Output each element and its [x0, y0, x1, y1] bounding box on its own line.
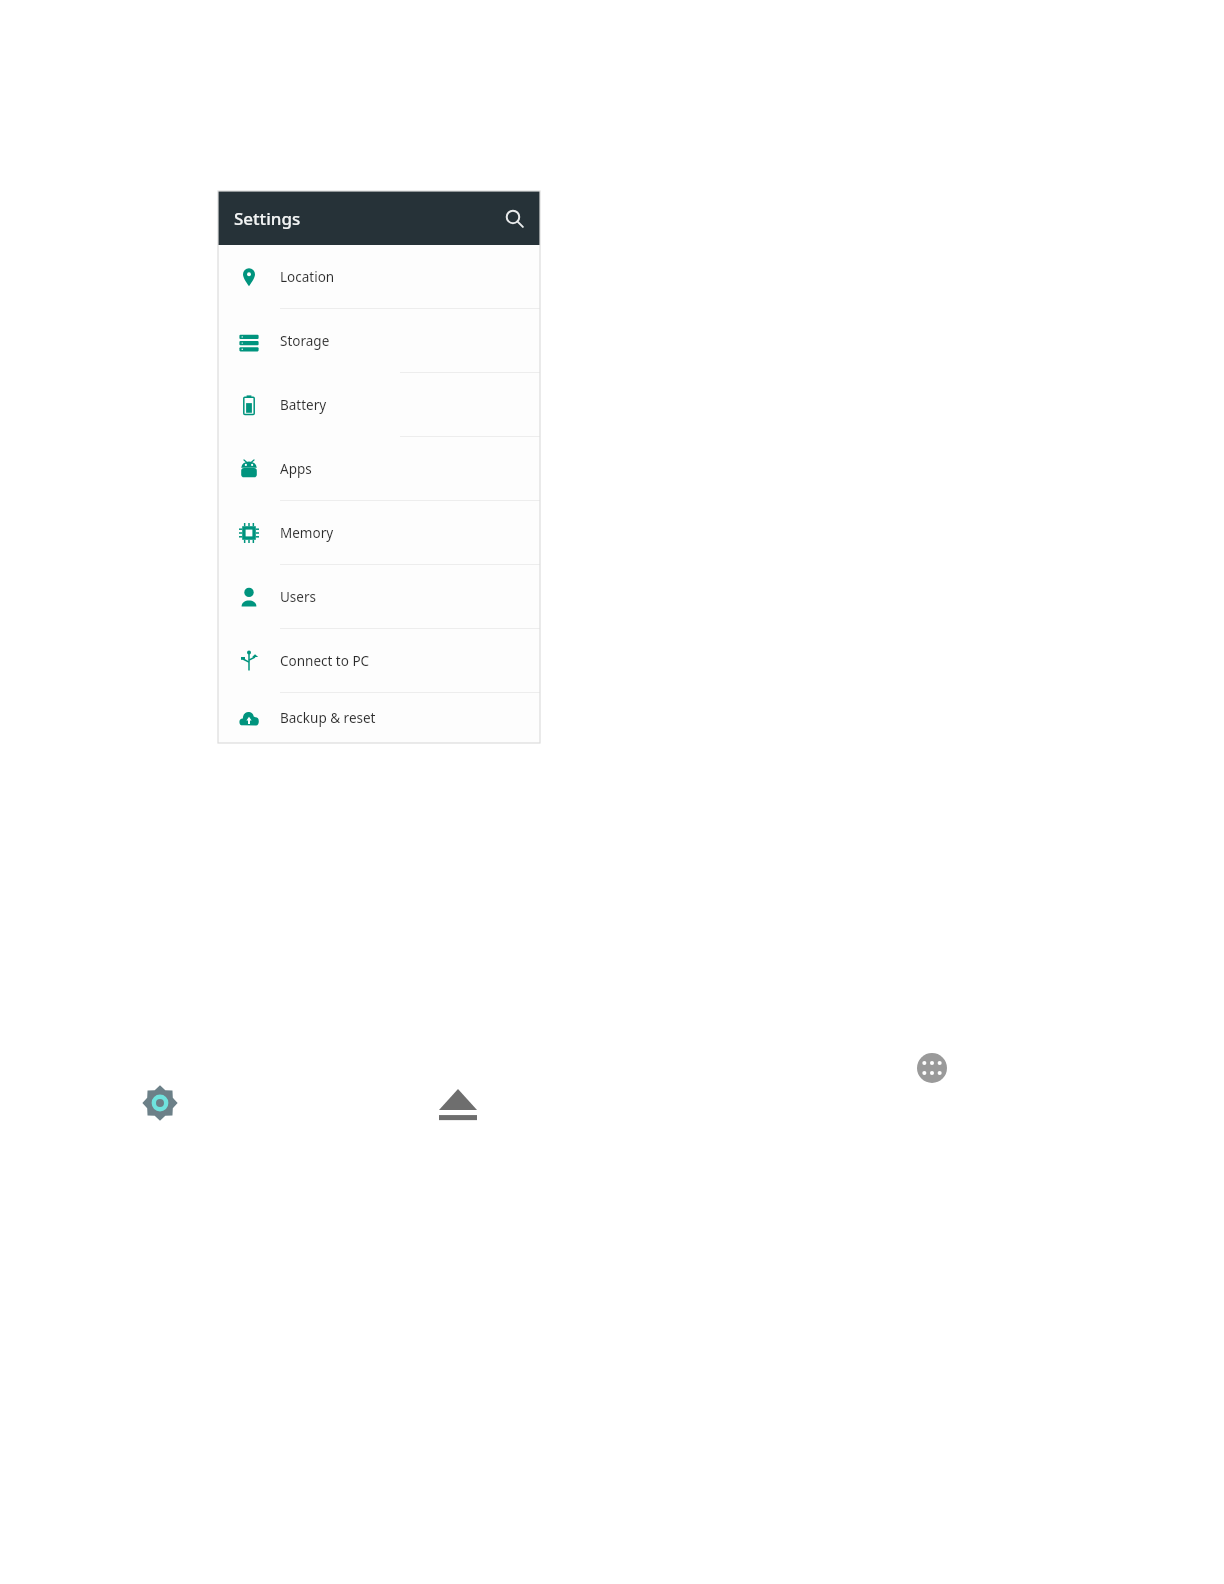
button[interactable]: Storage	[218, 309, 540, 372]
staticText: Backup & reset	[280, 709, 376, 727]
staticText: Battery	[280, 396, 327, 414]
staticText: Connect to PC	[280, 652, 370, 670]
button[interactable]: Connect to PC	[218, 629, 540, 692]
button[interactable]: Battery	[218, 373, 540, 436]
button[interactable]: Settings	[139, 1082, 181, 1124]
button[interactable]: All apps	[917, 1053, 947, 1083]
staticText: Memory	[280, 524, 334, 542]
button[interactable]: Backup & reset	[218, 693, 540, 743]
staticText: Storage	[280, 332, 330, 350]
button[interactable]: Search	[496, 200, 532, 236]
button[interactable]: Location	[218, 245, 540, 308]
staticText: Users	[280, 588, 316, 606]
staticText: Location	[280, 268, 335, 286]
staticText: Apps	[280, 460, 312, 478]
button[interactable]: Memory	[218, 501, 540, 564]
staticText: Settings	[234, 207, 301, 230]
button[interactable]: Eject	[433, 1084, 483, 1126]
button[interactable]: Users	[218, 565, 540, 628]
button[interactable]: Apps	[218, 437, 540, 500]
